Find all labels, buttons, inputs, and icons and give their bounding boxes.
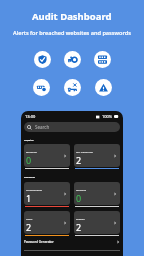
staticText: 2 xyxy=(76,154,82,166)
staticText: 2 xyxy=(26,221,32,233)
staticText: Identical xyxy=(76,188,86,191)
button[interactable]: Weak xyxy=(24,211,70,234)
button[interactable]: Shield xyxy=(34,51,51,68)
staticText: Search xyxy=(35,124,50,130)
button[interactable]: Expired xyxy=(74,211,120,234)
staticText: 0 xyxy=(76,192,82,204)
staticText: 13:00 xyxy=(25,114,36,119)
button[interactable]: Compromised xyxy=(24,182,70,205)
staticText: 2 xyxy=(76,221,82,233)
staticText: Expired xyxy=(76,217,85,220)
button[interactable]: Cards xyxy=(94,51,111,68)
staticText: Compromised xyxy=(26,188,43,191)
staticText: Alerts for breached websites and passwor… xyxy=(13,29,131,37)
staticText: Audit Dashboard xyxy=(32,10,112,23)
staticText: Breached xyxy=(26,150,37,153)
button[interactable]: Notes xyxy=(33,79,50,96)
staticText: 0 xyxy=(26,154,32,166)
staticText: Websites xyxy=(24,139,34,142)
button[interactable]: Revoked key xyxy=(64,79,81,96)
button[interactable]: Key xyxy=(64,51,81,68)
staticText: Weak xyxy=(26,217,33,220)
staticText: 100% xyxy=(102,114,113,119)
staticText: 1 xyxy=(26,192,32,204)
button[interactable]: Identical xyxy=(74,182,120,205)
button[interactable]: 2FA Supported xyxy=(74,144,120,167)
staticText: 2FA Supported xyxy=(76,150,93,153)
button[interactable]: Breached xyxy=(24,144,70,167)
staticText: Passwords xyxy=(24,176,36,179)
button[interactable]: Search xyxy=(24,122,120,132)
button[interactable]: Password Generator xyxy=(24,237,120,246)
staticText: Password Generator xyxy=(24,240,54,244)
button[interactable]: Warning xyxy=(95,79,112,96)
